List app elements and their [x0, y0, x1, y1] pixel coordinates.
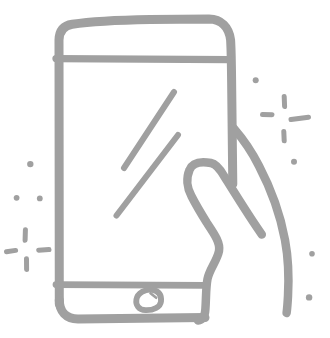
button[interactable]: Tap phone illustration: [0, 0, 330, 338]
